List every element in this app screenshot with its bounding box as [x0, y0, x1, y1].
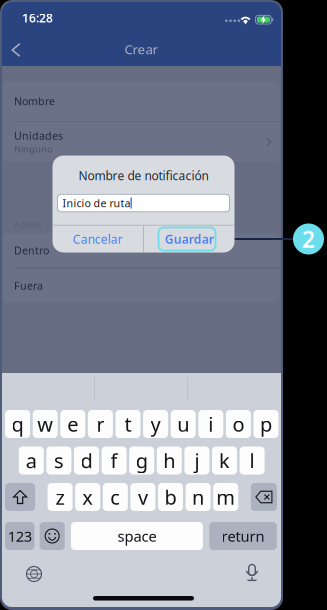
- staticText: return: [222, 526, 265, 546]
- button[interactable]: return: [209, 522, 277, 550]
- staticText: o: [232, 411, 244, 437]
- button[interactable]: n: [186, 483, 211, 511]
- staticText: u: [177, 411, 189, 437]
- staticText: l: [250, 447, 255, 474]
- staticText: Ninguno: [14, 143, 53, 155]
- button[interactable]: Unidades: [3, 122, 280, 162]
- staticText: m: [216, 484, 235, 510]
- staticText: Dentro: [14, 243, 49, 257]
- button[interactable]: c: [103, 483, 128, 511]
- staticText: Guardar: [165, 231, 214, 247]
- button[interactable]: Guardar: [144, 226, 234, 253]
- button[interactable]: h: [157, 446, 182, 474]
- button[interactable]: d: [74, 446, 99, 474]
- button[interactable]: w: [33, 410, 58, 438]
- button[interactable]: x: [75, 483, 100, 511]
- button[interactable]: v: [130, 483, 155, 511]
- button[interactable]: Back: [2, 35, 30, 65]
- staticText: x: [82, 484, 93, 510]
- button[interactable]: e: [60, 410, 85, 438]
- button[interactable]: p: [253, 410, 278, 438]
- staticText: k: [219, 447, 230, 474]
- button[interactable]: f: [102, 446, 127, 474]
- button[interactable]: Emoji: [40, 522, 65, 550]
- button[interactable]: y: [143, 410, 168, 438]
- staticText: 123: [8, 526, 32, 546]
- staticText: Inicio de ruta: [62, 196, 130, 210]
- staticText: j: [194, 447, 199, 474]
- staticText: e: [67, 411, 78, 437]
- staticText: Activar: [14, 218, 43, 230]
- button[interactable]: q: [5, 410, 30, 438]
- button[interactable]: Delete: [251, 483, 277, 511]
- staticText: t: [124, 411, 131, 437]
- staticText: r: [96, 411, 104, 437]
- staticText: z: [56, 484, 65, 510]
- staticText: h: [163, 447, 175, 474]
- staticText: Cancelar: [73, 231, 123, 247]
- button[interactable]: Nombre: [3, 81, 280, 121]
- button[interactable]: i: [198, 410, 223, 438]
- button[interactable]: z: [48, 483, 73, 511]
- button[interactable]: o: [226, 410, 251, 438]
- button[interactable]: Shift: [5, 483, 35, 511]
- button[interactable]: r: [88, 410, 113, 438]
- staticText: Fuera: [14, 279, 43, 293]
- staticText: b: [164, 484, 176, 510]
- button[interactable]: a: [19, 446, 44, 474]
- staticText: Crear: [124, 40, 158, 58]
- staticText: c: [110, 484, 120, 510]
- staticText: y: [151, 411, 161, 437]
- staticText: 16:28: [22, 10, 53, 26]
- staticText: i: [208, 411, 213, 437]
- button[interactable]: 123: [5, 522, 34, 550]
- button[interactable]: Cancelar: [52, 226, 143, 253]
- button[interactable]: Dentro: [3, 233, 280, 268]
- staticText: a: [26, 447, 37, 474]
- staticText: f: [111, 447, 118, 474]
- button[interactable]: t: [115, 410, 140, 438]
- staticText: n: [192, 484, 204, 510]
- button[interactable]: b: [158, 483, 183, 511]
- button[interactable]: k: [212, 446, 237, 474]
- button[interactable]: j: [184, 446, 209, 474]
- button[interactable]: Dictate: [238, 559, 266, 587]
- staticText: Unidades: [14, 129, 63, 143]
- staticText: v: [138, 484, 148, 510]
- staticText: p: [260, 411, 272, 437]
- button[interactable]: u: [171, 410, 196, 438]
- button[interactable]: s: [46, 446, 71, 474]
- staticText: space: [117, 526, 156, 546]
- staticText: Nombre: [14, 94, 55, 108]
- button[interactable]: Next keyboard: [20, 560, 48, 588]
- button[interactable]: space: [71, 522, 203, 550]
- staticText: g: [136, 447, 148, 474]
- staticText: d: [80, 447, 92, 474]
- staticText: Nombre de notificación: [78, 167, 208, 183]
- staticText: q: [12, 411, 24, 437]
- staticText: s: [54, 447, 64, 474]
- button[interactable]: m: [213, 483, 238, 511]
- button[interactable]: g: [129, 446, 154, 474]
- staticText: 2: [302, 224, 315, 254]
- button[interactable]: l: [240, 446, 265, 474]
- button[interactable]: Fuera: [3, 268, 280, 303]
- staticText: w: [37, 411, 53, 437]
